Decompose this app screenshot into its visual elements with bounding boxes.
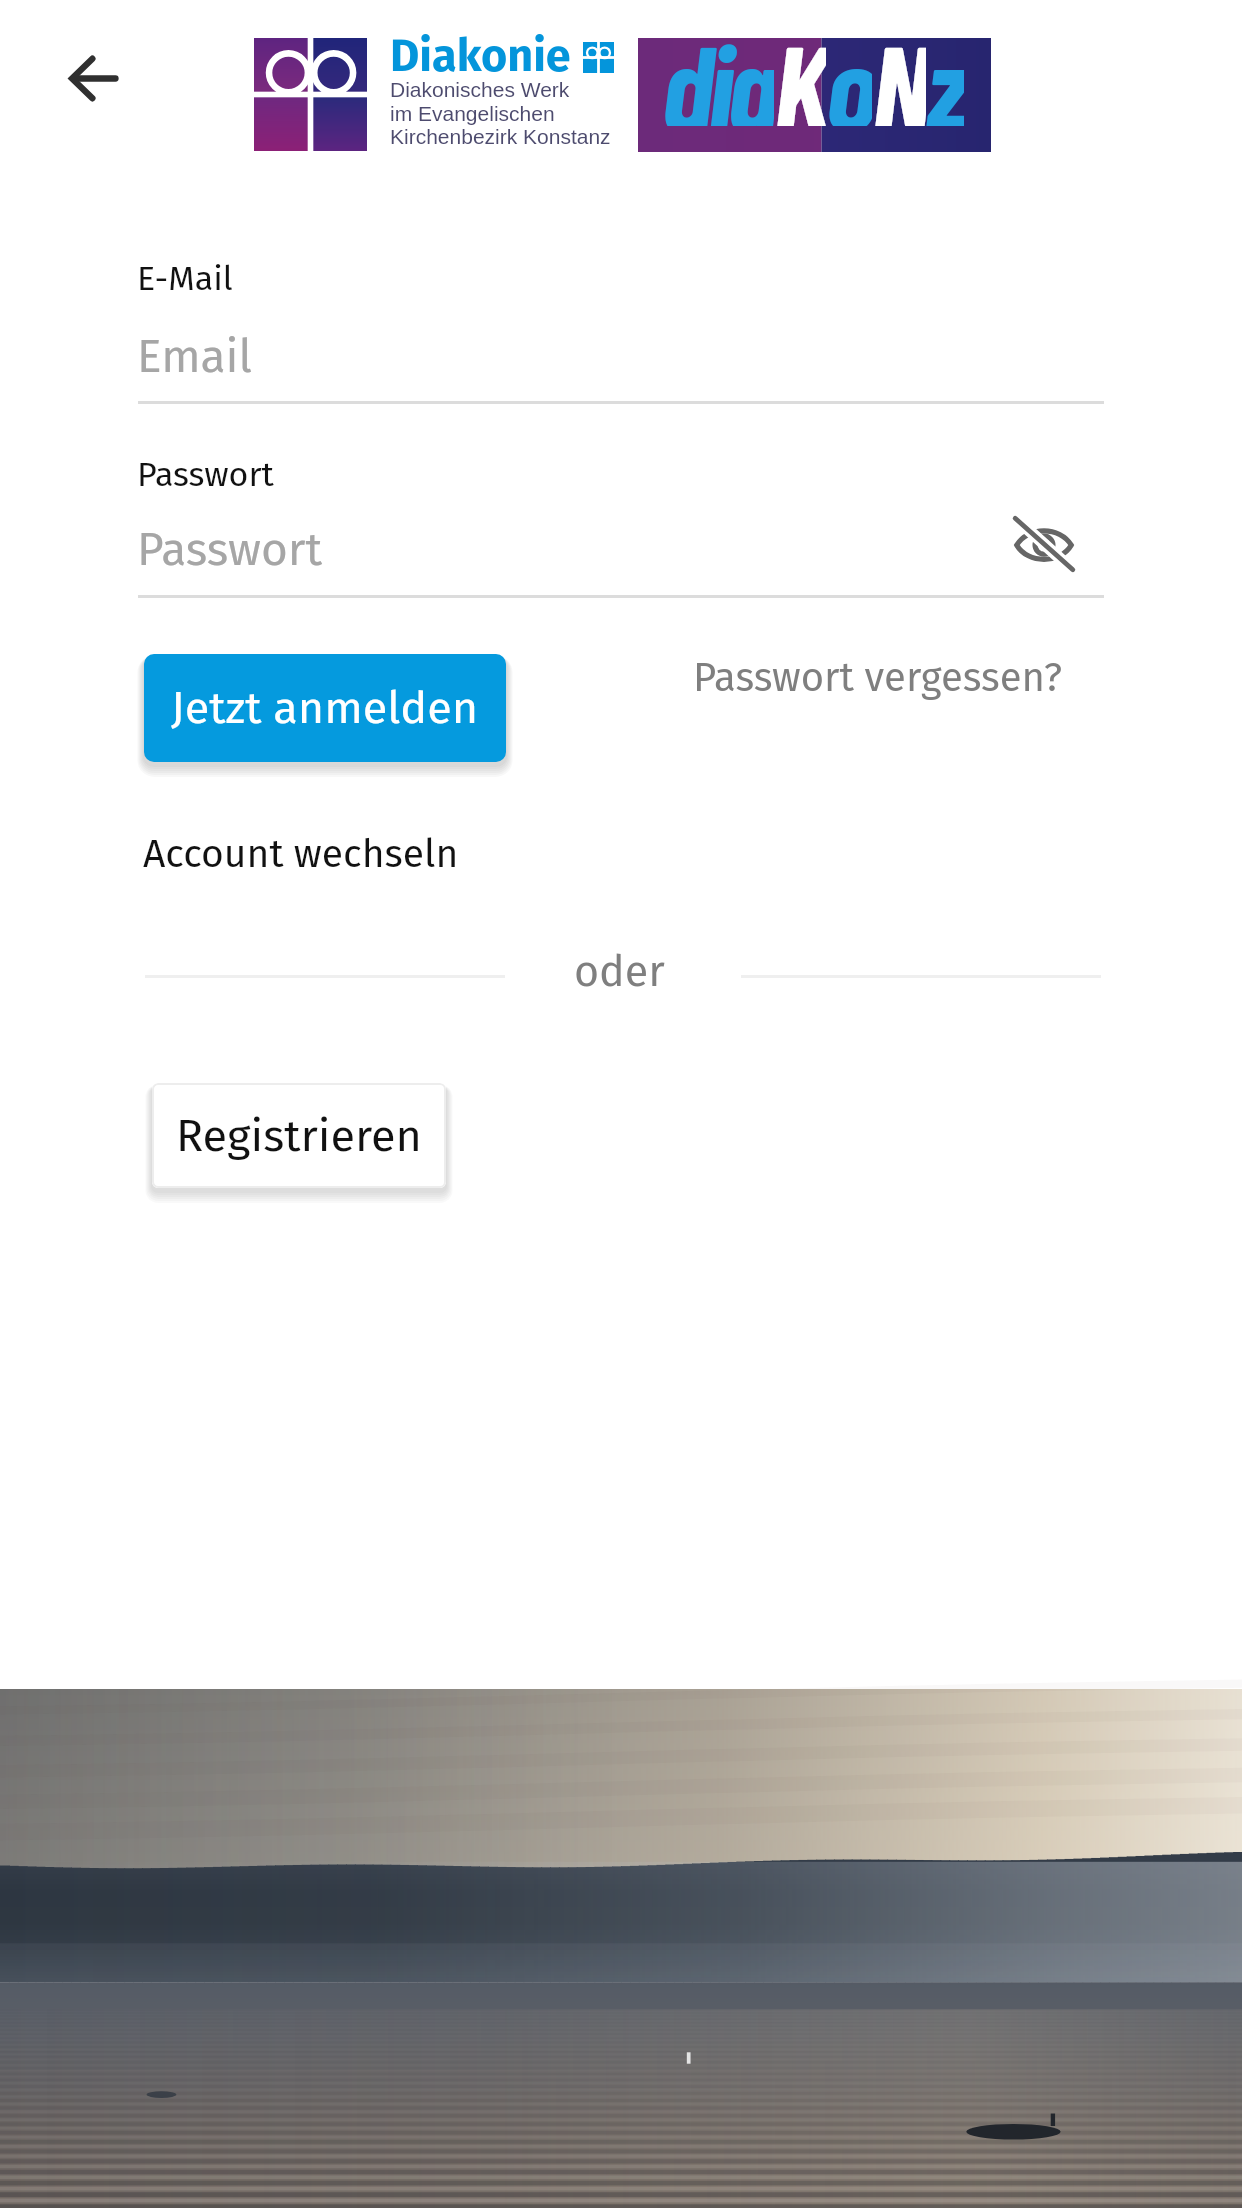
button[interactable]: Zurück [45,30,141,126]
button[interactable]: Passwort anzeigen [1002,502,1086,586]
staticText: K [774,38,826,126]
button[interactable]: Passwort vergessen? [681,644,1075,712]
staticText: Passwort [137,454,274,495]
staticText: dia [662,38,774,126]
staticText: Registrieren [176,1109,422,1163]
staticText: E-Mail [137,258,233,299]
staticText: oder [574,946,665,998]
staticText: Jetzt anmelden [171,681,479,735]
staticText: z [926,38,964,126]
staticText: Passwort [137,522,323,577]
button[interactable]: Registrieren [152,1083,446,1188]
staticText: N [872,38,926,126]
staticText: Account wechseln [143,831,459,878]
staticText: Diakonie [390,29,571,83]
button[interactable]: Account wechseln [131,821,471,888]
button[interactable]: Jetzt anmelden [144,654,506,762]
staticText: Passwort vergessen? [693,654,1063,702]
staticText: o [826,38,872,126]
staticText: Email [137,329,253,384]
staticText: Diakonisches Werk im Evangelischen Kirch… [390,78,611,148]
